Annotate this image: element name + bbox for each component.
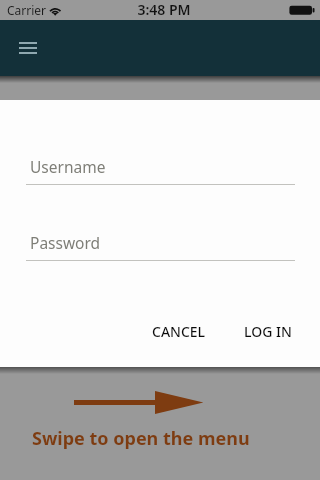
staticText: 3:48 PM [137,0,191,19]
button[interactable]: Open navigation menu [9,29,47,67]
staticText: Carrier [7,2,47,18]
button[interactable]: Password [26,224,295,260]
staticText: CANCEL [152,322,206,341]
button[interactable]: CANCEL [144,314,214,349]
staticText: Password [30,232,101,253]
button[interactable]: Username [26,148,295,184]
button[interactable]: Swipe to open the menu [0,367,320,480]
staticText: Swipe to open the menu [32,426,250,451]
staticText: Username [30,156,106,177]
staticText: LOG IN [244,322,292,341]
button[interactable]: LOG IN [236,314,300,349]
